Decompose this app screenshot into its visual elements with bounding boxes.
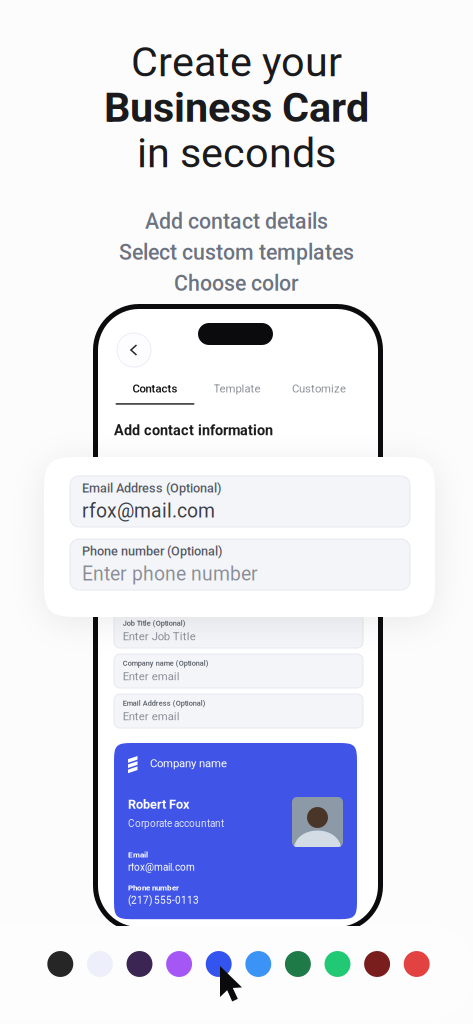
staticText: Choose color [174,271,299,296]
button[interactable]: Customize [278,382,360,405]
button[interactable]: Red [404,951,430,977]
staticText: (217) 555-0113 [128,894,199,906]
staticText: Template [213,382,260,395]
staticText: Enter email [123,710,180,723]
staticText: Email Address (Optional) [123,699,206,708]
staticText: Company name [150,757,227,770]
button[interactable]: Blue [206,951,232,977]
button[interactable]: Light blue [245,951,271,977]
staticText: in seconds [137,129,336,177]
button[interactable]: White [87,951,113,977]
button[interactable]: Back [117,333,151,367]
staticText: Add contact information [114,422,273,439]
button[interactable]: Contacts [114,382,196,405]
staticText: Customize [292,382,346,395]
staticText: Job Title (Optional) [123,619,186,628]
staticText: rfox@mail.com [128,861,195,873]
staticText: Email Address (Optional) [82,481,221,496]
staticText: Select custom templates [119,240,354,265]
button[interactable]: Dark purple [126,951,152,977]
staticText: Email [128,850,148,859]
staticText: Contacts [132,382,177,395]
button[interactable]: Black [47,951,73,977]
button[interactable]: Dark red [364,951,390,977]
staticText: Robert Fox [128,797,189,812]
staticText: Enter phone number [82,563,258,585]
staticText: Phone number [128,883,179,892]
staticText: rfox@mail.com [82,500,215,522]
button[interactable]: Dark green [285,951,311,977]
button[interactable]: Green [324,951,350,977]
staticText: Company name (Optional) [123,659,209,668]
staticText: Add contact details [145,209,328,234]
staticText: Phone number (Optional) [82,544,222,559]
staticText: Enter Job Title [123,630,196,643]
button[interactable]: Template [196,382,278,405]
button[interactable]: Purple [166,951,192,977]
staticText: Business Card [104,83,369,132]
staticText: Corporate accountant [128,818,224,829]
staticText: Create your [131,38,342,86]
staticText: Enter email [123,670,180,683]
